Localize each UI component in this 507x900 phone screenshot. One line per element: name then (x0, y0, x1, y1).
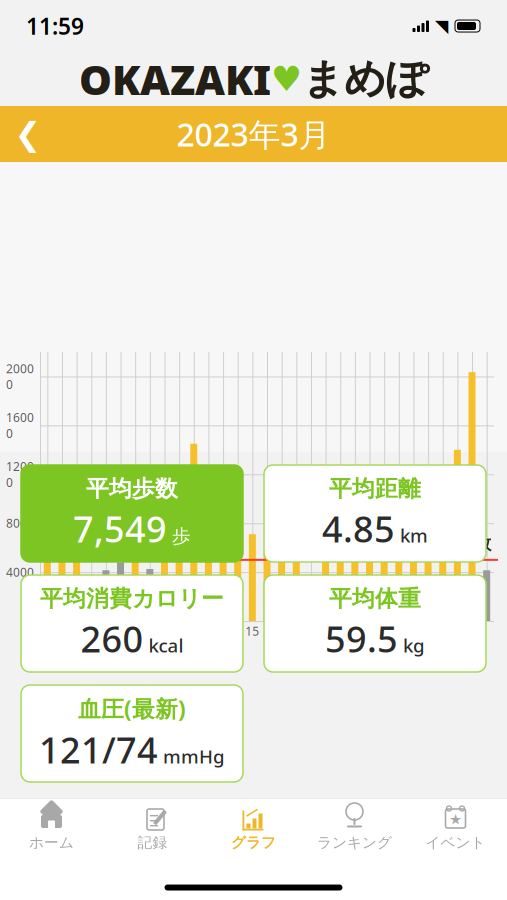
staticText: ◥ (435, 16, 448, 36)
staticText: 平均歩数 (86, 475, 178, 502)
staticText: kcal (148, 633, 183, 658)
staticText: 20 (319, 623, 333, 639)
staticText: 15 (245, 623, 259, 639)
staticText: まめぽ (302, 54, 428, 104)
staticText: イベント (425, 833, 485, 851)
staticText: 25 (392, 623, 406, 639)
button[interactable]: 平均体重 (264, 575, 486, 672)
staticText: 121/74 (39, 726, 158, 773)
staticText: 4.85 (322, 504, 395, 552)
staticText: 16000 (6, 409, 34, 441)
staticText: 260 (80, 614, 143, 662)
staticText: ホーム (29, 833, 74, 851)
staticText: 目標歩数 (423, 533, 491, 554)
staticText: 歩 (172, 525, 191, 548)
staticText: 平均消費カロリー (40, 585, 224, 612)
button[interactable]: 平均歩数 (21, 465, 243, 562)
staticText: 12000 (6, 458, 34, 490)
button[interactable]: ホーム (1, 799, 102, 855)
staticText: 4000 (6, 564, 34, 580)
button[interactable]: 平均消費カロリー (21, 575, 243, 672)
button[interactable]: 前の月 (0, 106, 56, 162)
button[interactable]: 記録 (102, 799, 203, 855)
staticText: グラフ (231, 833, 276, 851)
staticText: 2023年3月 (176, 113, 330, 155)
staticText: OKAZAKI (79, 52, 271, 106)
button[interactable]: ランキング (304, 799, 405, 855)
staticText: ❮ (14, 116, 41, 152)
staticText: 10 (172, 623, 186, 639)
staticText: 平均距離 (329, 475, 421, 502)
staticText: ランキング (317, 833, 392, 851)
button[interactable]: ★ (405, 799, 506, 855)
staticText: kg (403, 633, 425, 658)
staticText: 59.5 (325, 614, 398, 662)
button[interactable]: 平均距離 (264, 465, 486, 562)
staticText: km (400, 523, 428, 548)
button[interactable]: 血圧(最新) (21, 685, 243, 782)
button[interactable]: グラフ (203, 799, 304, 855)
staticText: 5 (102, 623, 109, 639)
staticText: 7,549 (73, 504, 167, 552)
staticText: ♥ (271, 59, 302, 99)
staticText: 20000 (6, 360, 34, 392)
staticText: mmHg (163, 744, 225, 769)
staticText: 11:59 (26, 11, 84, 41)
staticText: 記録 (137, 833, 167, 851)
staticText: 8000 (6, 515, 34, 531)
staticText: 血圧(最新) (78, 693, 186, 724)
staticText: 平均体重 (329, 585, 421, 612)
staticText: ★ (449, 811, 462, 828)
